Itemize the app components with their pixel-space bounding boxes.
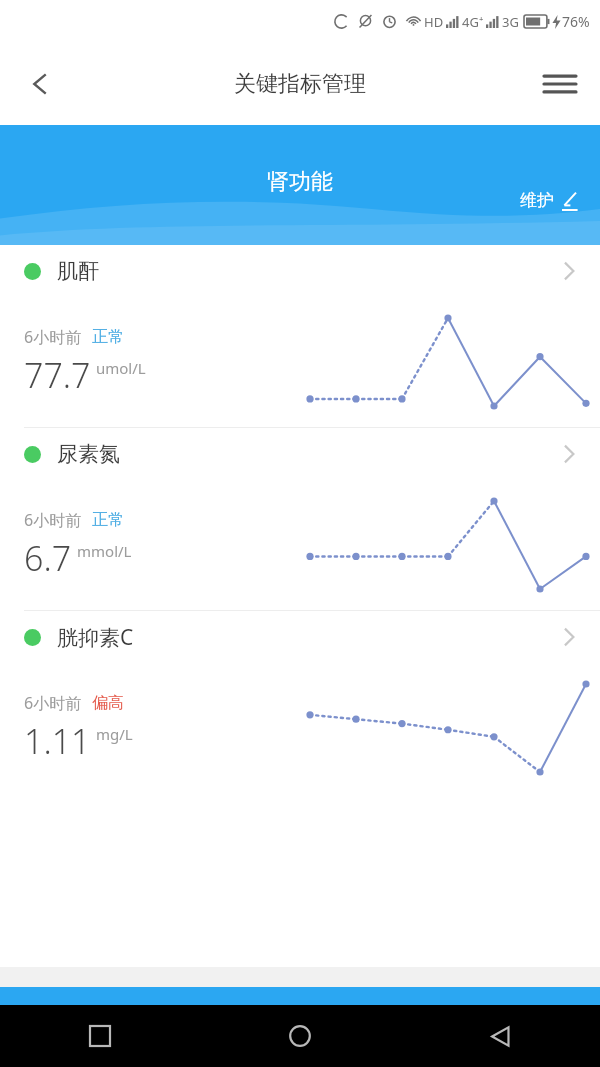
staticText: 胱抑素C [57, 623, 134, 652]
staticText: 77.7 [24, 352, 91, 398]
button[interactable]: Recents [0, 1005, 200, 1067]
button[interactable]: Back [400, 1005, 600, 1067]
staticText: 6小时前 [24, 509, 82, 531]
button[interactable]: Menu [534, 58, 586, 110]
staticText: 肾功能 [267, 168, 333, 196]
staticText: 维护 [520, 190, 554, 211]
button[interactable]: Back [14, 58, 66, 110]
button[interactable]: 维护 [516, 186, 584, 215]
staticText: mmol/L [77, 541, 132, 561]
staticText: 正常 [92, 510, 124, 530]
staticText: 4G⁺ [462, 13, 484, 31]
staticText: 1.11 [24, 718, 91, 764]
staticText: 76% [562, 12, 590, 31]
staticText: umol/L [96, 358, 146, 378]
button[interactable]: 肌酐 [0, 245, 600, 427]
staticText: mg/L [96, 724, 133, 744]
button[interactable]: 胱抑素C [0, 611, 600, 793]
staticText: 正常 [92, 327, 124, 347]
staticText: 尿素氮 [57, 441, 120, 467]
staticText: 肌酐 [57, 258, 99, 284]
staticText: 偏高 [92, 693, 124, 713]
staticText: HD [424, 13, 444, 31]
button[interactable]: Home [200, 1005, 400, 1067]
staticText: 6小时前 [24, 326, 82, 348]
staticText: 6.7 [24, 535, 72, 581]
staticText: 6小时前 [24, 692, 82, 714]
staticText: 关键指标管理 [234, 70, 366, 98]
button[interactable]: 尿素氮 [0, 428, 600, 610]
staticText: 3G [502, 13, 519, 31]
